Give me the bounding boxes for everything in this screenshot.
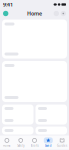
button[interactable]: Saved [41, 135, 55, 149]
button[interactable] [35, 104, 67, 124]
button[interactable]: More [61, 11, 66, 16]
button[interactable] [2, 61, 67, 102]
button[interactable]: Guides [55, 135, 69, 149]
button[interactable]: Profile [3, 11, 8, 16]
button[interactable] [2, 19, 67, 58]
staticText: Home [3, 144, 11, 147]
staticText: 9:41 [3, 1, 13, 8]
button[interactable]: Alerts [28, 135, 41, 149]
staticText: Saved [45, 144, 52, 147]
button[interactable] [2, 104, 33, 124]
staticText: Safety [17, 144, 24, 147]
button[interactable] [2, 126, 33, 134]
staticText: Alerts [30, 144, 38, 147]
button[interactable] [35, 126, 67, 134]
staticText: Guides [57, 144, 67, 147]
staticText: Home [27, 10, 42, 17]
button[interactable]: Home [0, 135, 14, 149]
button[interactable]: Safety [14, 135, 28, 149]
